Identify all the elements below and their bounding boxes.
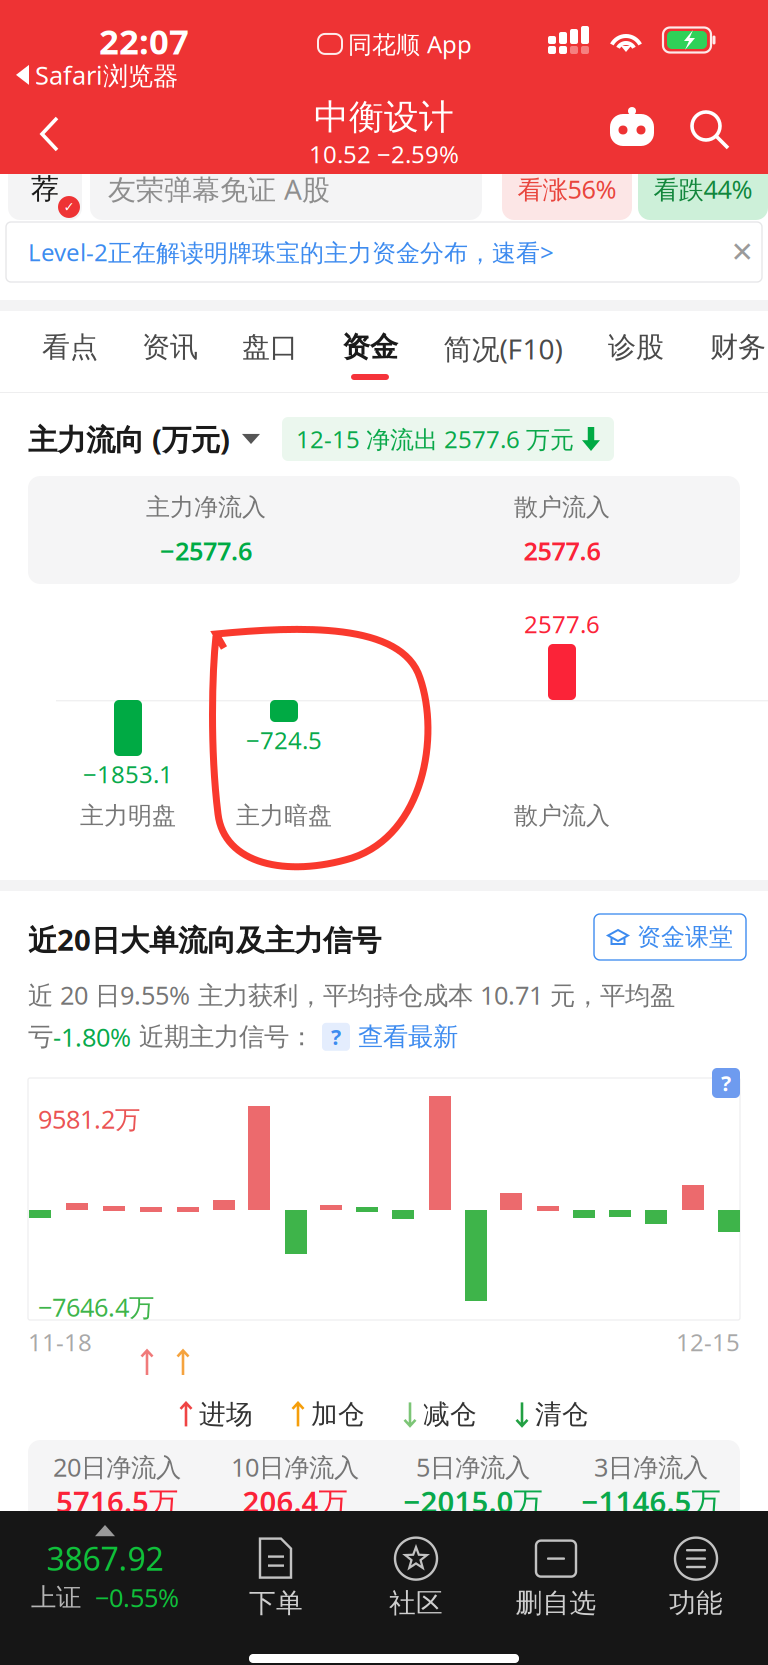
- staticText: 10日净流入: [231, 1450, 359, 1484]
- staticText: −7646.4万: [38, 1290, 154, 1324]
- staticText: 3日净流入: [594, 1450, 708, 1484]
- staticText: −724.5: [246, 724, 322, 756]
- button[interactable]: 盘口: [180, 322, 360, 396]
- button[interactable]: 诊股: [546, 322, 726, 396]
- staticText: −2577.6: [160, 534, 252, 567]
- staticText: 22:07: [99, 18, 189, 64]
- staticText: 社区: [389, 1587, 443, 1619]
- staticText: 10.52 −2.59%: [309, 138, 459, 170]
- staticText: −0.55%: [95, 1581, 179, 1614]
- staticText: −1146.5万: [581, 1482, 720, 1521]
- staticText: 9.55%: [120, 978, 190, 1012]
- staticText: 散户流入: [514, 801, 610, 830]
- staticText: ✓: [63, 199, 74, 214]
- staticText: 主力获利，平均持仓成本 10.71 元，平均盈: [190, 978, 675, 1012]
- staticText: 看跌44%: [653, 172, 752, 206]
- staticText: Level-2正在解读明牌珠宝的主力资金分布，速看>: [28, 236, 554, 268]
- staticText: 简况(F10): [443, 330, 562, 367]
- button[interactable]: 资金课堂: [594, 914, 746, 960]
- staticText: ?: [721, 1069, 731, 1097]
- button[interactable]: 简况(F10): [413, 322, 593, 396]
- button[interactable]: 资讯: [80, 322, 260, 396]
- staticText: 财务: [710, 330, 766, 364]
- staticText: 资金课堂: [637, 922, 733, 952]
- button[interactable]: 社区: [346, 1537, 486, 1619]
- button[interactable]: 搜索: [690, 110, 732, 152]
- staticText: 近20日大单流向及主力信号: [28, 920, 381, 959]
- staticText: 资金: [342, 330, 398, 364]
- staticText: 资讯: [142, 330, 198, 364]
- staticText: 11-18: [28, 1326, 92, 1358]
- staticText: 荐: [31, 172, 59, 206]
- button[interactable]: 删自选: [486, 1537, 626, 1619]
- button[interactable]: Level-2正在解读明牌珠宝的主力资金分布，速看>: [6, 222, 762, 282]
- staticText: 进场: [199, 1398, 253, 1431]
- staticText: 12-15: [676, 1326, 740, 1358]
- staticText: 清仓: [535, 1398, 589, 1431]
- staticText: −1853.1: [83, 758, 173, 790]
- button[interactable]: 说明: [712, 1068, 740, 1098]
- button[interactable]: 资金: [280, 322, 460, 396]
- staticText: 近 20 日: [28, 978, 120, 1012]
- staticText: 删自选: [515, 1587, 596, 1619]
- staticText: 206.4万: [242, 1482, 347, 1521]
- button[interactable]: 看点: [0, 322, 160, 396]
- staticText: ?: [331, 1023, 341, 1051]
- staticText: 12-15 净流出 2577.6 万元: [296, 423, 574, 455]
- staticText: 同花顺 App: [348, 28, 472, 60]
- staticText: 上证: [31, 1582, 81, 1613]
- staticText: 5716.5万: [56, 1482, 178, 1521]
- staticText: 主力暗盘: [236, 801, 332, 830]
- staticText: 主力明盘: [80, 801, 176, 830]
- staticText: 2577.6: [523, 534, 600, 567]
- staticText: 减仓: [423, 1398, 477, 1431]
- staticText: 功能: [669, 1587, 723, 1619]
- staticText: -1.80%: [53, 1020, 131, 1054]
- staticText: 亏: [28, 1021, 53, 1052]
- staticText: 主力净流入: [146, 492, 266, 522]
- button[interactable]: 智能助手: [606, 106, 658, 154]
- staticText: 5日净流入: [416, 1450, 530, 1484]
- button[interactable]: 返回: [14, 98, 86, 170]
- staticText: −2015.0万: [403, 1482, 542, 1521]
- staticText: Safari浏览器: [35, 58, 178, 92]
- staticText: 看涨56%: [517, 172, 616, 206]
- staticText: 近期主力信号：: [131, 1021, 314, 1052]
- staticText: 散户流入: [514, 492, 610, 522]
- button[interactable]: 功能: [626, 1537, 766, 1619]
- staticText: 主力流向 (万元): [28, 419, 230, 458]
- staticText: 9581.2万: [38, 1102, 140, 1136]
- staticText: 诊股: [608, 330, 664, 364]
- staticText: 3867.92: [46, 1537, 163, 1580]
- staticText: 友荣弹幕免证 A股: [108, 170, 330, 208]
- staticText: 看点: [42, 330, 98, 364]
- button[interactable]: 下单: [206, 1537, 346, 1619]
- staticText: 2577.6: [524, 608, 600, 640]
- button[interactable]: 财务: [648, 322, 768, 396]
- staticText: 加仓: [311, 1398, 365, 1431]
- staticText: 下单: [249, 1587, 303, 1619]
- staticText: 20日净流入: [53, 1450, 181, 1484]
- staticText: ✕: [730, 236, 753, 268]
- staticText: 中衡设计: [314, 96, 454, 139]
- staticText: 查看最新: [358, 1021, 458, 1052]
- staticText: 盘口: [242, 330, 298, 364]
